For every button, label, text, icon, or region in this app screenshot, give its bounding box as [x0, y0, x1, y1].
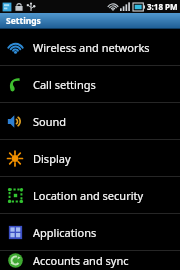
button[interactable]: Wireless and networks [0, 29, 180, 65]
staticText: Applications [33, 225, 97, 240]
staticText: Display [33, 151, 71, 166]
staticText: Wireless and networks [33, 40, 150, 55]
staticText: Sound [33, 114, 67, 129]
button[interactable]: Accounts and sync [0, 251, 180, 270]
staticText: Location and security [33, 188, 144, 203]
button[interactable]: Applications [0, 214, 180, 250]
staticText: Accounts and sync [33, 253, 129, 268]
button[interactable]: Call settings [0, 66, 180, 102]
button[interactable]: Sound [0, 103, 180, 139]
button[interactable]: Location and security [0, 177, 180, 213]
staticText: Settings [6, 15, 41, 27]
staticText: Call settings [33, 77, 96, 92]
button[interactable]: Display [0, 140, 180, 176]
staticText: 3:18 PM [147, 1, 178, 12]
